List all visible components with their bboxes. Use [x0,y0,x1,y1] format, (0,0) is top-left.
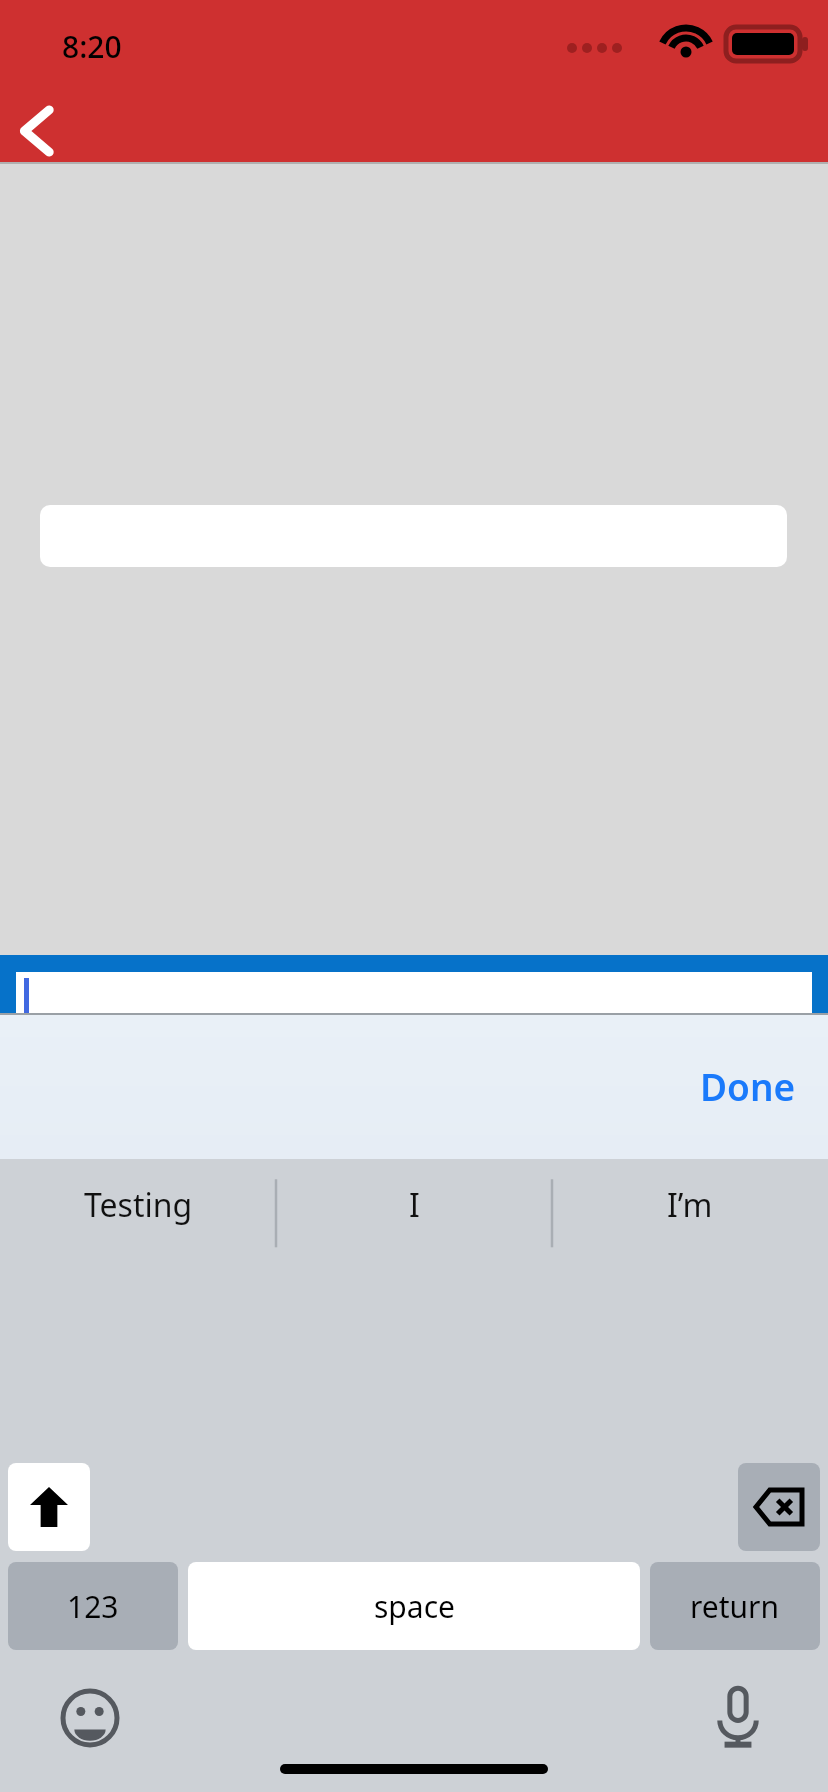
button[interactable] [16,972,812,1013]
button[interactable]: I [276,1159,552,1251]
staticText: 123 [67,1586,119,1627]
staticText: 8:20 [62,26,122,67]
button[interactable]: Emoji [48,1676,132,1760]
button[interactable]: Testing [0,1159,276,1251]
button[interactable]: 123 [8,1562,178,1650]
button[interactable]: Backspace [738,1463,820,1551]
button[interactable]: Dictate [696,1676,780,1760]
staticText: I’m [667,1183,713,1227]
button[interactable]: space [188,1562,640,1650]
button[interactable]: Back [0,96,76,166]
button[interactable]: Shift [8,1463,90,1551]
staticText: Testing [84,1183,193,1227]
button[interactable]: return [650,1562,820,1650]
button[interactable]: Done [686,1051,810,1121]
staticText: space [374,1586,455,1627]
staticText: return [690,1586,780,1627]
button[interactable]: I’m [552,1159,828,1251]
staticText: Done [700,1061,796,1111]
staticText: I [409,1183,420,1227]
